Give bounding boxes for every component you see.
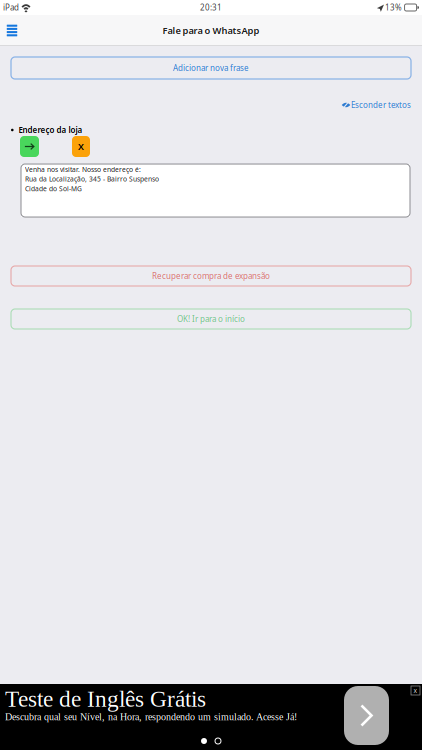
staticText: Descubra qual seu Nível, na Hora, respon… xyxy=(5,711,297,723)
staticText: x xyxy=(413,686,417,695)
button[interactable]: Enviar frase xyxy=(20,136,39,157)
staticText: Venha nos visitar. Nosso endereço é: xyxy=(25,165,141,174)
button[interactable]: OK! Ir para o início xyxy=(11,309,411,329)
button[interactable]: Adicionar nova frase xyxy=(11,57,411,79)
staticText: 20:31 xyxy=(200,2,222,13)
button[interactable]: Menu xyxy=(0,15,24,46)
button[interactable]: Próximo anúncio xyxy=(344,686,389,745)
button[interactable]: Fechar anúncio xyxy=(411,686,420,695)
staticText: Endereço da loja xyxy=(19,125,83,135)
staticText: Esconder textos xyxy=(351,100,411,110)
staticText: Rua da Localização, 345 - Bairro Suspens… xyxy=(25,175,159,183)
button[interactable]: Recuperar compra de expansão xyxy=(11,266,411,286)
staticText: 13% xyxy=(385,2,402,13)
staticText: Fale para o WhatsApp xyxy=(162,24,259,37)
staticText: iPad xyxy=(3,2,19,13)
staticText: Teste de Inglês Grátis xyxy=(5,686,206,712)
staticText: Adicionar nova frase xyxy=(173,63,249,73)
staticText: Cidade do Sol-MG xyxy=(25,184,82,193)
staticText: OK! Ir para o início xyxy=(177,314,245,324)
button[interactable]: Esconder textos xyxy=(341,99,411,111)
button[interactable]: Excluir frase xyxy=(72,136,90,157)
staticText: Recuperar compra de expansão xyxy=(152,271,270,281)
staticText: X xyxy=(78,140,84,153)
